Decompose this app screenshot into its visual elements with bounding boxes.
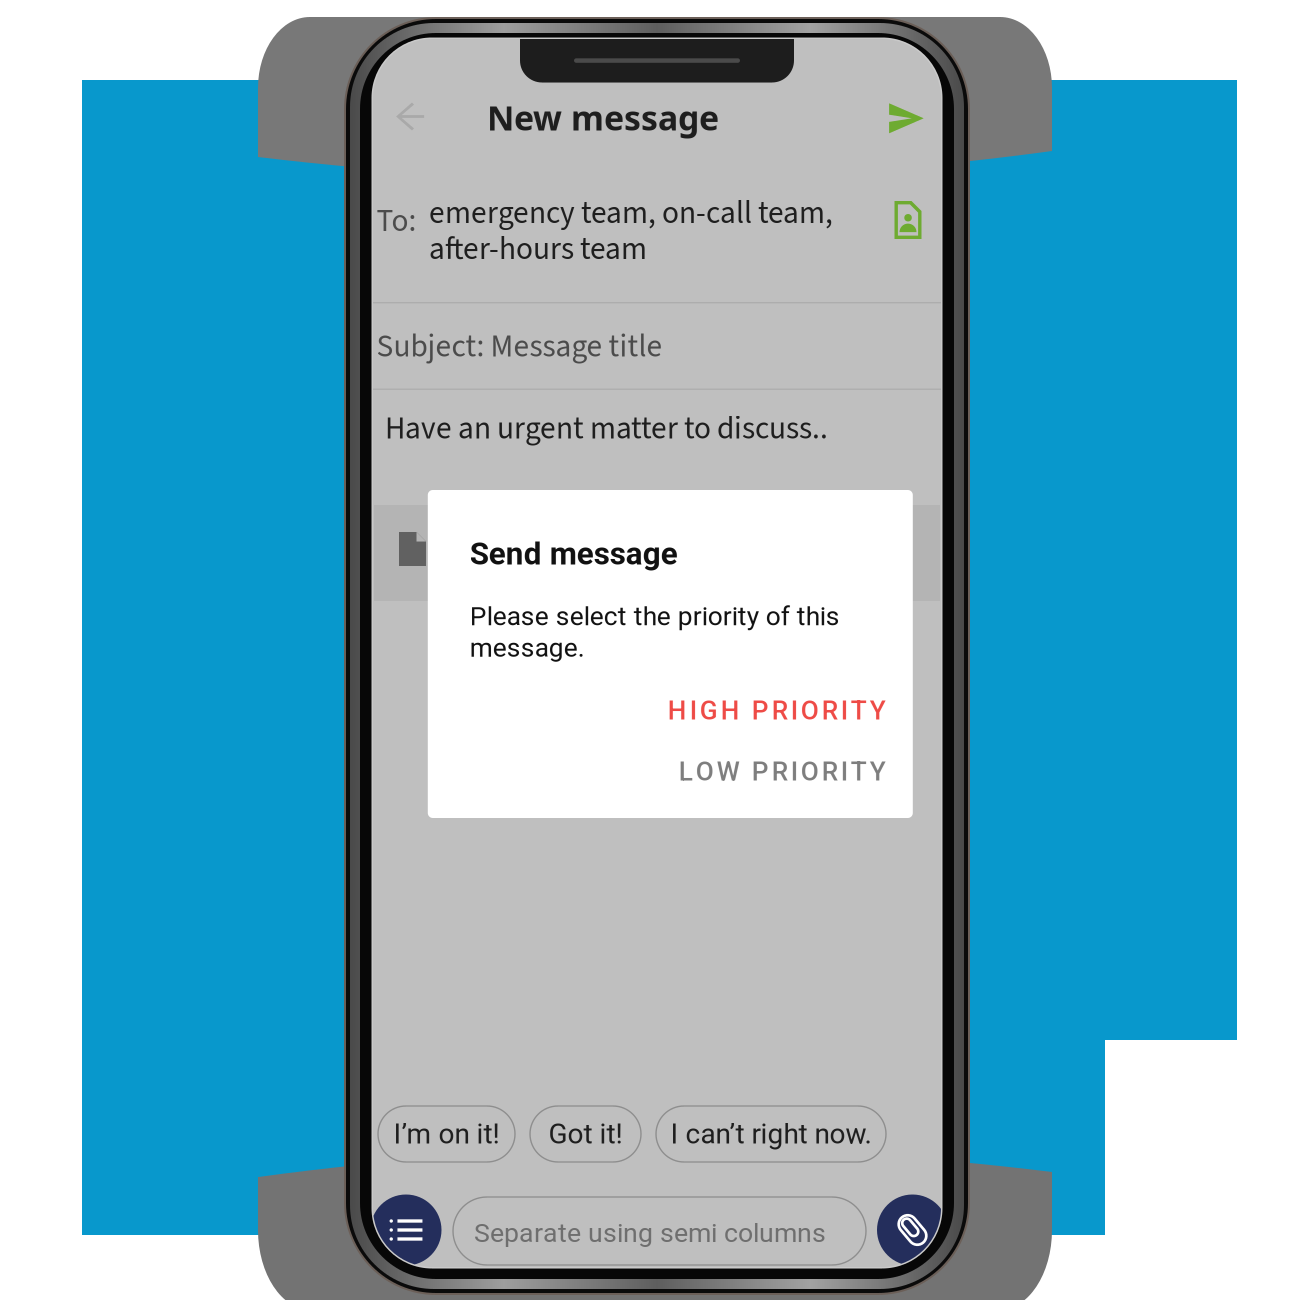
- button[interactable]: I can’t right now.: [656, 1106, 886, 1162]
- staticText: New message: [487, 94, 719, 140]
- staticText: To:: [376, 199, 416, 244]
- staticText: Got it!: [548, 1118, 622, 1150]
- staticText: L O W P R I O R I T Y: [679, 756, 886, 787]
- button[interactable]: L O W P R I O R I T Y: [466, 751, 886, 791]
- staticText: I’m on it!: [393, 1118, 499, 1150]
- button[interactable]: Send: [880, 94, 932, 142]
- button[interactable]: New message: [453, 94, 753, 140]
- button[interactable]: Got it!: [530, 1106, 641, 1162]
- staticText: Have an urgent matter to discuss..: [385, 406, 828, 451]
- staticText: Separate using semi columns: [474, 1217, 826, 1249]
- button[interactable]: Recipient lists: [370, 1194, 441, 1265]
- staticText: H I G H P R I O R I T Y: [668, 695, 886, 726]
- staticText: Send message: [470, 535, 678, 572]
- staticText: Subject: Message title: [376, 324, 662, 369]
- button[interactable]: I’m on it!: [378, 1106, 515, 1162]
- button[interactable]: Choose contacts: [885, 196, 931, 244]
- button[interactable]: H I G H P R I O R I T Y: [466, 690, 886, 730]
- staticText: message.: [470, 632, 585, 663]
- staticText: emergency team, on-call team,: [429, 191, 833, 235]
- staticText: Please select the priority of this: [470, 601, 840, 632]
- button[interactable]: Attach file: [877, 1194, 948, 1265]
- button[interactable]: Back: [384, 92, 436, 140]
- staticText: I can’t right now.: [670, 1118, 871, 1150]
- staticText: after-hours team: [429, 227, 647, 271]
